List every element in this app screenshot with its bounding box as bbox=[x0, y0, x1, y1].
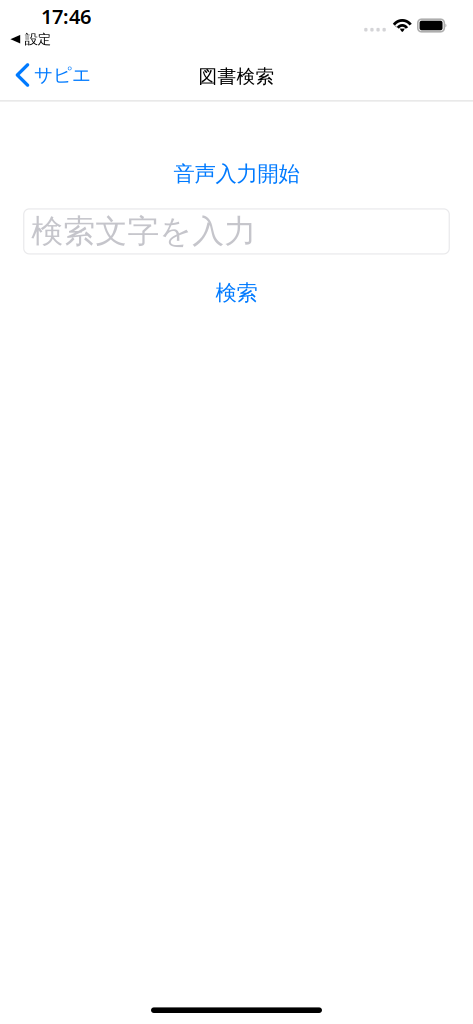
staticText: 検索 bbox=[215, 280, 257, 306]
staticText: 設定 bbox=[25, 31, 51, 47]
button[interactable]: サピエ bbox=[0, 57, 103, 93]
staticText: 図書検索 bbox=[198, 65, 274, 88]
button[interactable]: 音声入力開始 bbox=[151, 154, 321, 194]
button[interactable]: 検索文字を入力 bbox=[24, 209, 449, 254]
button[interactable]: 設定 bbox=[0, 0, 59, 49]
button[interactable]: 検索 bbox=[193, 273, 279, 313]
staticText: 17:46 bbox=[41, 3, 91, 30]
staticText: サピエ bbox=[34, 63, 91, 86]
staticText: 検索文字を入力 bbox=[31, 212, 256, 251]
staticText: 音声入力開始 bbox=[173, 161, 299, 187]
